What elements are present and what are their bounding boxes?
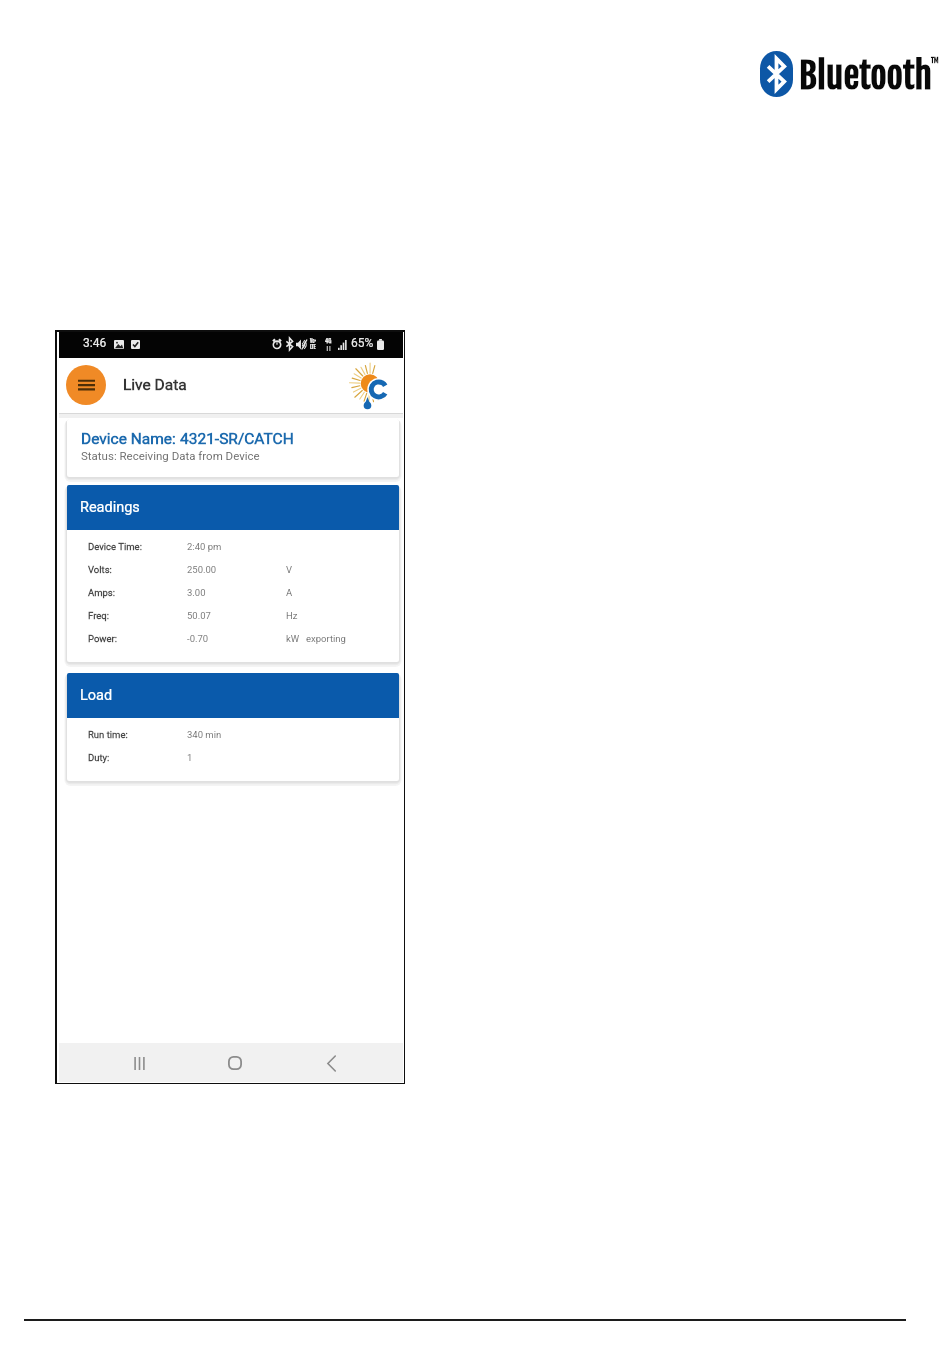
staticText: Volts: <box>88 564 112 575</box>
button[interactable]: Freq: <box>67 607 399 630</box>
staticText: 3:46 <box>83 336 107 350</box>
staticText: LTE <box>310 344 316 350</box>
staticText: 4321-SR/CATCH <box>180 430 294 448</box>
staticText: Hz <box>286 610 298 621</box>
staticText: 2:40 pm <box>187 541 222 552</box>
staticText: V <box>286 564 293 575</box>
button[interactable]: Volts: <box>67 561 399 584</box>
staticText: Readings <box>80 499 140 516</box>
button[interactable]: Readings <box>67 485 399 530</box>
staticText: Power: <box>88 633 118 644</box>
staticText: 340 min <box>187 729 222 740</box>
staticText: -0.70 <box>187 633 209 644</box>
staticText: 1 <box>187 752 193 763</box>
staticText: 3.00 <box>187 587 206 598</box>
staticText: Device Name: <box>81 430 180 448</box>
button[interactable]: Duty: <box>67 749 399 772</box>
staticText: Duty: <box>88 752 110 763</box>
staticText: Freq: <box>88 610 109 621</box>
button[interactable]: Run time: <box>67 726 399 749</box>
staticText: 50.07 <box>187 610 211 621</box>
staticText: Device Time: <box>88 541 142 552</box>
staticText: A <box>286 587 293 598</box>
staticText: 65% <box>351 336 374 350</box>
staticText: 250.00 <box>187 564 217 575</box>
staticText: Load <box>80 687 113 704</box>
button[interactable]: CATCH Power logo <box>348 361 389 410</box>
button[interactable]: Power: <box>67 630 399 653</box>
button[interactable]: Home <box>211 1050 259 1076</box>
button[interactable]: Device Time: <box>67 538 399 561</box>
staticText: 4G <box>325 337 332 345</box>
staticText: Bluetooth <box>799 53 932 98</box>
staticText: Run time: <box>88 729 128 740</box>
staticText: Amps: <box>88 587 116 598</box>
button[interactable]: Amps: <box>67 584 399 607</box>
staticText: exporting <box>306 633 346 644</box>
staticText: Vo• <box>310 338 317 344</box>
button[interactable]: Load <box>67 673 399 718</box>
staticText: TM <box>931 56 939 65</box>
button[interactable]: Back <box>307 1050 355 1076</box>
button[interactable]: Recent apps <box>115 1050 163 1076</box>
button[interactable]: Open navigation menu <box>66 365 106 405</box>
button[interactable]: Device Name: <box>67 419 399 477</box>
staticText: Live Data <box>123 376 187 394</box>
staticText: Status: Receiving Data from Device <box>81 449 260 462</box>
staticText: kW <box>286 633 300 644</box>
